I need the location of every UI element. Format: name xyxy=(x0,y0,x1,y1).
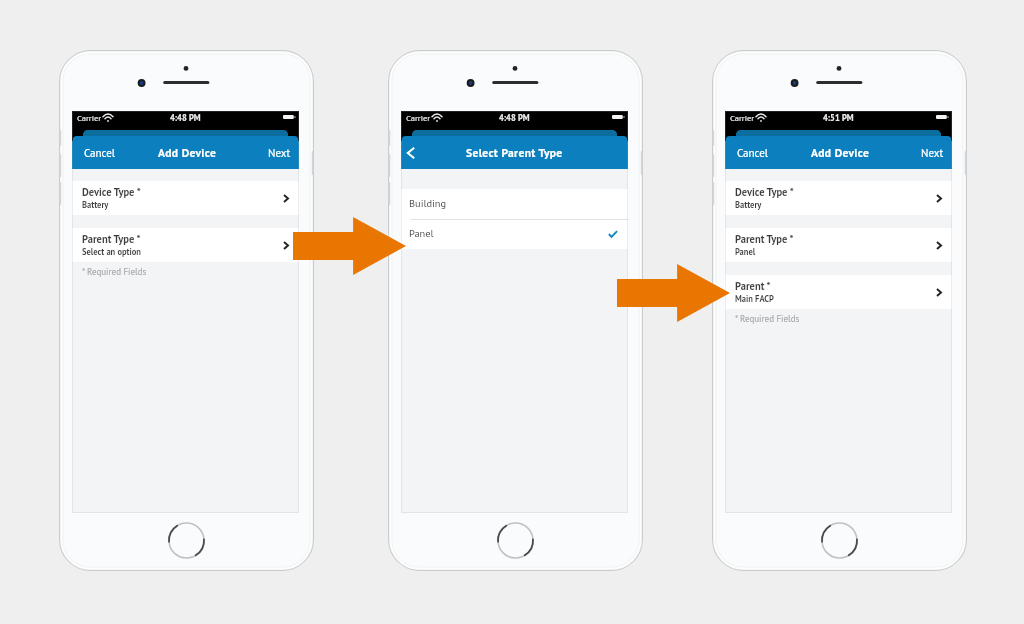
staticText: Parent * xyxy=(735,279,771,293)
button[interactable]: Building xyxy=(401,189,628,219)
staticText: Next xyxy=(921,146,944,160)
staticText: Device Type * xyxy=(735,185,794,199)
staticText: Battery xyxy=(735,199,762,210)
staticText: 4:51 PM xyxy=(823,112,854,123)
staticText: Carrier xyxy=(406,112,431,123)
staticText: 4:48 PM xyxy=(170,112,201,123)
staticText: Panel xyxy=(409,226,608,239)
button[interactable]: Parent Type * xyxy=(72,228,299,262)
staticText: Panel xyxy=(735,246,756,257)
button[interactable]: Cancel xyxy=(725,136,785,169)
staticText: Carrier xyxy=(730,112,755,123)
staticText: Cancel xyxy=(737,146,769,160)
button[interactable]: Parent Type * xyxy=(725,228,952,262)
button[interactable]: Next xyxy=(892,136,952,169)
staticText: Parent Type * xyxy=(735,232,794,246)
button[interactable]: Device Type * xyxy=(72,181,299,215)
button[interactable]: Device Type * xyxy=(725,181,952,215)
staticText: Carrier xyxy=(77,112,102,123)
staticText: Cancel xyxy=(84,146,116,160)
staticText: Add Device xyxy=(811,145,870,160)
staticText: Battery xyxy=(82,199,109,210)
button[interactable]: Back xyxy=(401,136,423,169)
staticText: 4:48 PM xyxy=(499,112,530,123)
staticText: Next xyxy=(268,146,291,160)
staticText: Main FACP xyxy=(735,293,774,304)
staticText: * Required Fields xyxy=(735,313,800,325)
staticText: Parent Type * xyxy=(82,232,141,246)
staticText: Select an option xyxy=(82,246,141,257)
staticText: * Required Fields xyxy=(82,266,147,278)
button[interactable]: Panel xyxy=(401,219,628,249)
button[interactable]: Parent * xyxy=(725,275,952,309)
staticText: Device Type * xyxy=(82,185,141,199)
staticText: Select Parent Type xyxy=(466,145,563,160)
staticText: Add Device xyxy=(158,145,217,160)
button[interactable]: Cancel xyxy=(72,136,132,169)
staticText: Building xyxy=(409,196,618,209)
button[interactable]: Next xyxy=(239,136,299,169)
